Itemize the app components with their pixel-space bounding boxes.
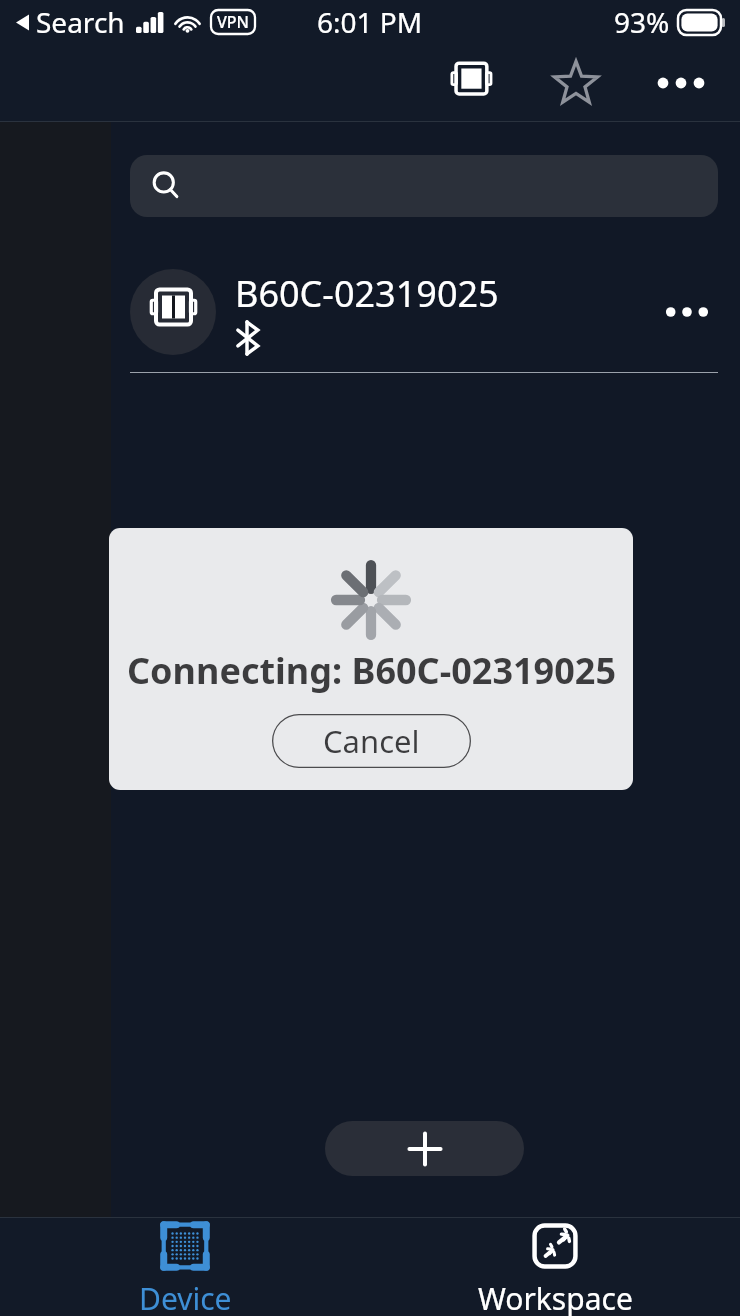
- staticText: 6:01 PM: [317, 3, 423, 41]
- button[interactable]: Workspace: [370, 1218, 740, 1316]
- button[interactable]: Device options: [656, 281, 718, 343]
- staticText: Connecting: B60C-02319025: [127, 646, 616, 695]
- button[interactable]: Device: [0, 1218, 370, 1316]
- button[interactable]: Cancel: [272, 714, 471, 768]
- button[interactable]: B60C-02319025: [130, 252, 718, 372]
- staticText: B60C-02319025: [235, 269, 499, 318]
- button[interactable]: Favorites: [543, 50, 609, 116]
- staticText: Cancel: [323, 720, 420, 762]
- staticText: VPN: [217, 11, 250, 33]
- staticText: Workspace: [478, 1278, 633, 1316]
- staticText: 93%: [614, 3, 670, 41]
- button[interactable]: More options: [648, 50, 714, 116]
- button[interactable]: Add device: [325, 1121, 524, 1176]
- button[interactable]: [130, 155, 718, 217]
- button[interactable]: Scanner: [438, 50, 504, 116]
- staticText: Device: [139, 1278, 232, 1316]
- staticText: Search: [36, 3, 125, 41]
